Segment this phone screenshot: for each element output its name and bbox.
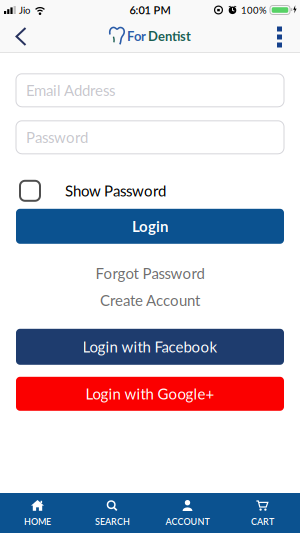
staticText: Login with Google+ [85, 385, 214, 403]
button[interactable]: Forgot Password [95, 266, 204, 281]
button[interactable]: SEARCH [75, 493, 150, 533]
button[interactable] [0, 25, 27, 46]
staticText: HOME [24, 516, 51, 527]
staticText: Dentist [148, 28, 191, 44]
staticText: Email Address [26, 81, 115, 99]
staticText: For [127, 28, 146, 44]
button[interactable]: HOME [0, 493, 75, 533]
button[interactable]: Show Password [0, 181, 300, 201]
button[interactable] [277, 24, 300, 47]
button[interactable]: Login with Google+ [16, 377, 284, 411]
staticText: Login with Facebook [82, 338, 217, 356]
staticText: ACCOUNT [165, 516, 209, 527]
staticText: Forgot Password [95, 264, 204, 282]
staticText: Create Account [100, 291, 200, 309]
staticText: 6:01 PM [129, 3, 170, 17]
staticText: Jio [19, 4, 30, 16]
button[interactable]: Create Account [100, 293, 200, 308]
staticText: Password [26, 128, 88, 146]
staticText: 100% [241, 4, 267, 16]
button[interactable]: ACCOUNT [150, 493, 225, 533]
button[interactable]: Login with Facebook [16, 329, 284, 365]
staticText: SEARCH [95, 516, 130, 527]
staticText: CART [251, 516, 274, 527]
staticText: Login [132, 217, 168, 235]
staticText: Show Password [65, 182, 166, 200]
button[interactable]: Login [16, 209, 284, 244]
button[interactable]: CART [225, 493, 300, 533]
